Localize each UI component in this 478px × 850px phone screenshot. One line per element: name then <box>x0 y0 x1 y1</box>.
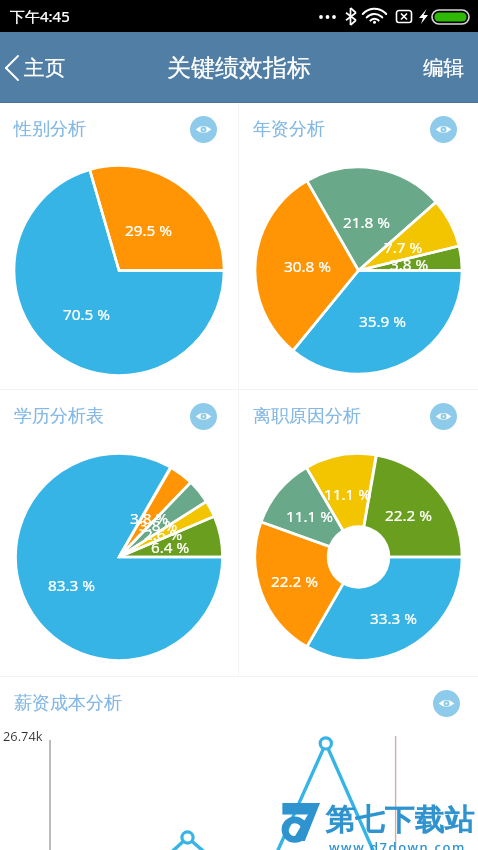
button[interactable]: 主页 <box>0 45 78 91</box>
staticText: 33.3 % <box>370 608 418 629</box>
staticText: 下午4:45 <box>10 6 70 26</box>
staticText: www.d7down.com <box>329 838 466 850</box>
staticText: 主页 <box>24 55 66 81</box>
staticText: 70.5 % <box>63 304 111 325</box>
staticText: 第七下载站 <box>325 801 474 839</box>
staticText: 2.6 % <box>144 524 183 545</box>
staticText: 29.5 % <box>125 220 173 241</box>
staticText: 关键绩效指标 <box>167 53 311 83</box>
button[interactable]: View chart details <box>190 403 217 430</box>
staticText: 7.7 % <box>384 237 423 258</box>
staticText: 21.8 % <box>343 212 391 233</box>
staticText: 6.4 % <box>151 537 190 558</box>
button[interactable]: View chart details <box>433 690 460 717</box>
staticText: 22.2 % <box>385 505 433 526</box>
staticText: 薪资成本分析 <box>14 692 122 715</box>
staticText: 11.1 % <box>286 506 334 527</box>
staticText: 3.8 % <box>390 254 429 275</box>
staticText: 35.9 % <box>359 311 407 332</box>
button[interactable]: View chart details <box>190 116 217 143</box>
staticText: 3.8 % <box>130 508 169 529</box>
staticText: 83.3 % <box>48 575 96 596</box>
button[interactable]: View chart details <box>430 403 457 430</box>
staticText: 学历分析表 <box>14 405 104 428</box>
staticText: 22.2 % <box>271 571 319 592</box>
button[interactable]: View chart details <box>430 116 457 143</box>
staticText: 3.8 % <box>139 515 178 536</box>
staticText: 年资分析 <box>253 118 325 141</box>
button[interactable]: 编辑 <box>407 45 478 91</box>
staticText: 26.74k <box>3 727 43 744</box>
staticText: 离职原因分析 <box>253 405 361 428</box>
staticText: 性别分析 <box>14 118 86 141</box>
staticText: 30.8 % <box>284 256 332 277</box>
staticText: 11.1 % <box>324 484 372 505</box>
